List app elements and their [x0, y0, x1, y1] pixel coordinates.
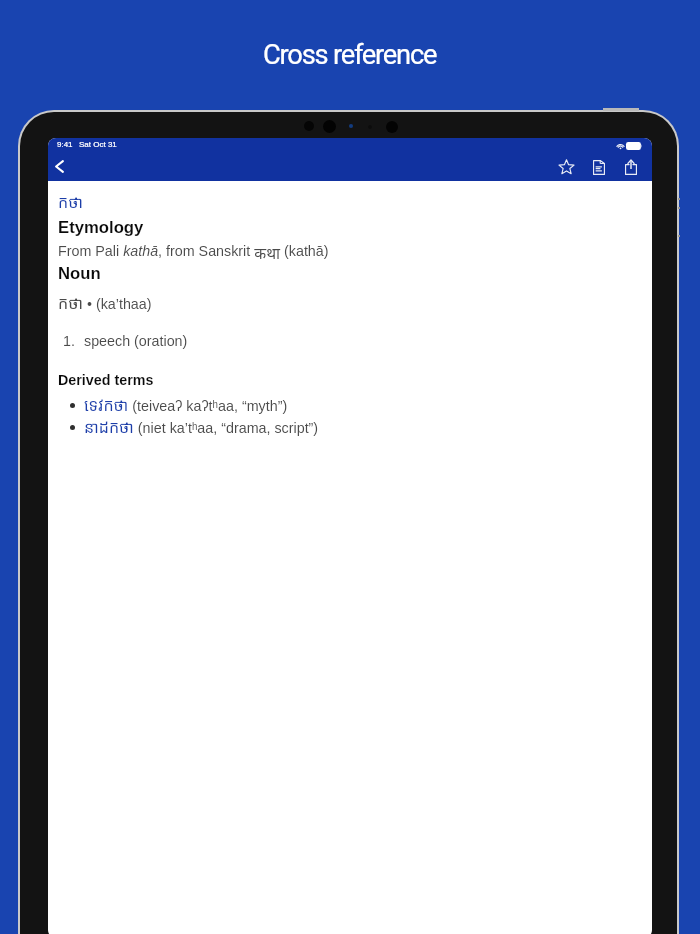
- button[interactable]: នាដកថា (niet ka’tʰaa, “drama, script”): [70, 416, 319, 438]
- staticText: Cross reference: [263, 39, 437, 71]
- staticText: កថា • (ka’thaa): [58, 292, 152, 314]
- staticText: 9:41: [57, 140, 73, 149]
- staticText: 1.: [63, 333, 75, 349]
- button[interactable]: View source: [588, 156, 610, 178]
- staticText: Etymology: [58, 218, 144, 237]
- button[interactable]: Share: [620, 156, 642, 178]
- staticText: កថា: [58, 191, 83, 213]
- staticText: Derived terms: [58, 372, 154, 388]
- staticText: នាដកថា (niet ka’tʰaa, “drama, script”): [84, 416, 319, 438]
- staticText: speech (oration): [84, 333, 188, 349]
- button[interactable]: ទេវកថា (teiveaʔ kaʔtʰaa, “myth”): [70, 394, 288, 416]
- staticText: From Pali kathā, from Sanskrit कथा (kath…: [58, 242, 329, 263]
- staticText: ទេវកថា (teiveaʔ kaʔtʰaa, “myth”): [84, 394, 288, 416]
- button[interactable]: Back: [48, 154, 71, 178]
- button[interactable]: Add to favourites: [555, 156, 577, 178]
- button[interactable]: កថា: [58, 191, 83, 213]
- staticText: Sat Oct 31: [79, 140, 117, 149]
- staticText: Noun: [58, 264, 101, 283]
